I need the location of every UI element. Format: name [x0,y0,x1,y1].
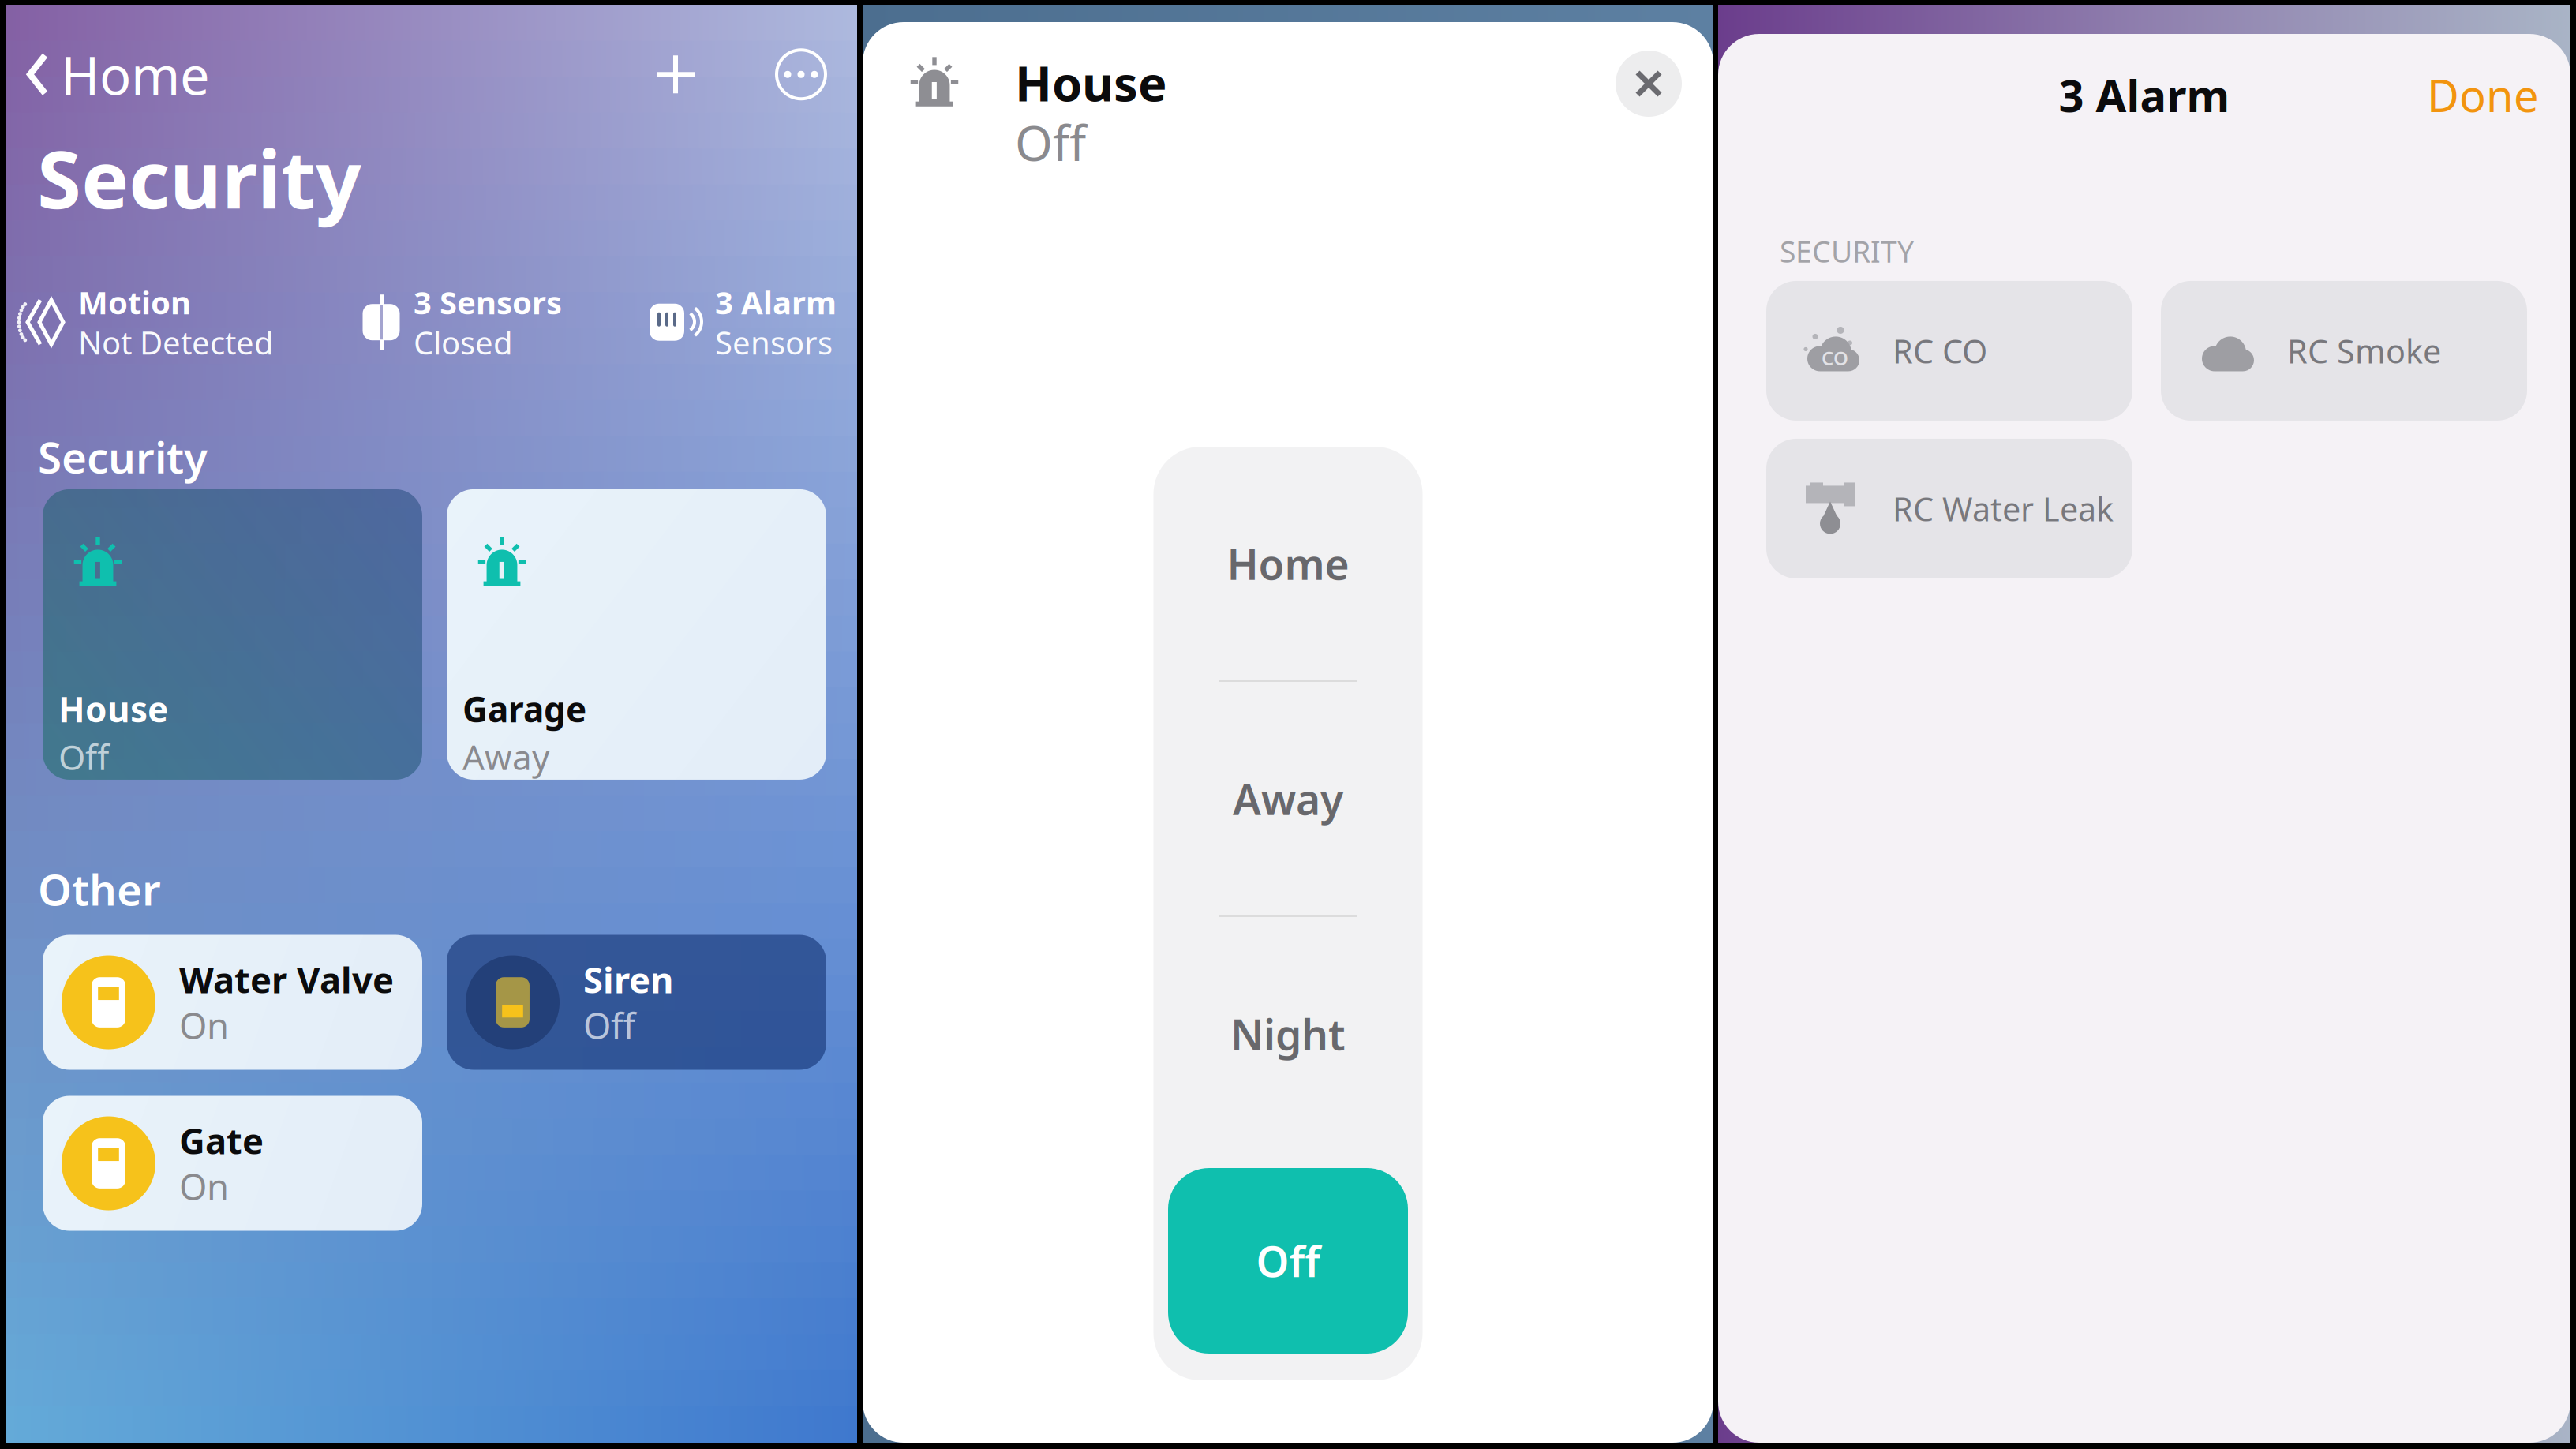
button[interactable]: Night [1153,917,1423,1151]
button[interactable]: Siren [447,935,826,1070]
button[interactable]: CO [1766,281,2132,421]
staticText: 3 Alarm [715,281,837,323]
button[interactable]: Garage [447,489,826,780]
staticText: Water Valve [179,956,394,1003]
button[interactable]: Close [1616,51,1682,117]
staticText: Home [1227,536,1349,591]
staticText: Security [38,428,208,485]
staticText: Off [1256,1233,1320,1289]
staticText: Gate [179,1117,264,1164]
staticText: Siren [583,956,673,1003]
staticText: On [179,1002,229,1049]
staticText: Closed [414,321,513,363]
staticText: Garage [462,686,586,732]
button[interactable]: Water Valve [43,935,422,1070]
staticText: 3 Alarm [2059,66,2230,124]
button[interactable]: Off [1168,1168,1408,1354]
staticText: Home [61,39,210,109]
staticText: House [1015,51,1167,115]
button[interactable]: Add Accessory [636,44,777,104]
staticText: RC Smoke [2287,329,2441,372]
staticText: RC Water Leak [1893,487,2114,530]
staticText: Done [2427,66,2539,124]
staticText: Other [38,860,161,917]
button[interactable]: Away [1153,682,1423,915]
staticText: Sensors [715,321,833,363]
staticText: CO [1822,345,1848,370]
button[interactable]: RC Smoke [2161,281,2527,421]
staticText: Off [58,734,109,780]
staticText: Not Detected [78,321,274,363]
button[interactable]: Home [26,33,210,116]
staticText: Off [583,1002,635,1049]
button[interactable]: Home [1153,447,1423,680]
button[interactable]: More Options [777,44,826,105]
button[interactable]: Gate [43,1096,422,1231]
staticText: House [58,686,168,732]
staticText: Security [37,124,361,231]
button[interactable]: House [43,489,422,780]
staticText: Away [1233,771,1343,827]
button[interactable]: Done [2422,58,2544,132]
staticText: On [179,1163,229,1210]
staticText: Away [462,734,549,780]
staticText: Night [1230,1006,1346,1062]
staticText: SECURITY [1780,232,1914,271]
button[interactable]: RC Water Leak [1766,439,2132,578]
staticText: RC CO [1893,329,1987,372]
staticText: Motion [78,281,191,323]
staticText: 3 Sensors [414,281,562,323]
staticText: Off [1015,110,1086,174]
